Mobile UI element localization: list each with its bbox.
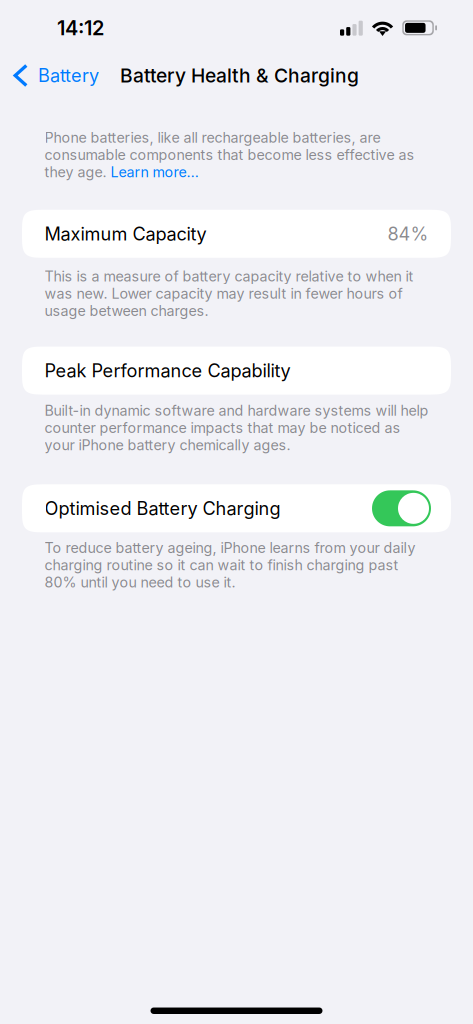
button[interactable]: Optimised Battery Charging bbox=[0, 484, 473, 532]
staticText: Battery Health & Charging bbox=[120, 64, 359, 87]
staticText: consumable components that become less e… bbox=[44, 146, 414, 164]
button[interactable]: Peak Performance Capability bbox=[0, 347, 473, 395]
staticText: 14:12 bbox=[57, 16, 104, 40]
staticText: Built-in dynamic software and hardware s… bbox=[44, 402, 428, 454]
staticText: Optimised Battery Charging bbox=[44, 497, 280, 519]
staticText: Maximum Capacity bbox=[44, 223, 206, 245]
button[interactable]: Maximum Capacity bbox=[0, 210, 473, 258]
staticText: To reduce battery ageing, iPhone learns … bbox=[44, 539, 415, 591]
staticText: Battery bbox=[38, 64, 99, 86]
staticText: they age. bbox=[44, 163, 110, 181]
button[interactable]: Learn more… bbox=[110, 163, 198, 181]
staticText: This is a measure of battery capacity re… bbox=[44, 268, 413, 319]
staticText: Learn more… bbox=[110, 163, 198, 181]
button[interactable]: Battery bbox=[0, 56, 107, 95]
staticText: 84% bbox=[387, 223, 428, 245]
staticText: Peak Performance Capability bbox=[44, 360, 290, 381]
button[interactable]: Optimised Battery Charging, on bbox=[372, 490, 431, 526]
staticText: Phone batteries, like all rechargeable b… bbox=[44, 129, 380, 146]
